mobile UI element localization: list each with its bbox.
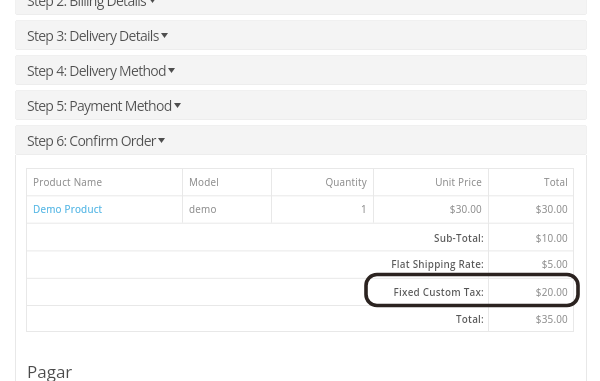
staticText: demo [189,202,265,215]
staticText: Pagar [27,360,73,381]
staticText: $30.00 [380,202,482,215]
staticText: Step 4: Delivery Method [27,61,166,80]
staticText: Demo Product [33,202,176,215]
staticText: Step 3: Delivery Details [27,26,159,45]
staticText: Unit Price [380,175,482,188]
staticText: Product Name [33,175,176,188]
staticText: Step 6: Confirm Order [27,131,156,150]
staticText: $10.00 [495,231,568,244]
staticText: $30.00 [495,202,568,215]
button[interactable]: Step 6: Confirm Order [15,125,587,155]
staticText: Total: [33,312,484,325]
staticText: Sub-Total: [33,231,484,244]
staticText: Total [495,175,568,188]
button[interactable]: Step 5: Payment Method [15,90,587,120]
staticText: Flat Shipping Rate: [33,257,484,270]
button[interactable]: Demo Product [26,195,182,222]
staticText: $20.00 [495,285,568,298]
button[interactable]: Step 3: Delivery Details [15,20,587,50]
staticText: $35.00 [495,312,568,325]
button[interactable]: Step 2: Billing Details [15,0,587,15]
button[interactable]: Step 4: Delivery Method [15,55,587,85]
staticText: Step 5: Payment Method [27,96,172,115]
staticText: Fixed Custom Tax: [33,285,484,298]
staticText: 1 [278,202,367,215]
staticText: Step 2: Billing Details [27,0,147,10]
staticText: Quantity [278,175,367,188]
staticText: $5.00 [495,257,568,270]
staticText: Model [189,175,265,188]
